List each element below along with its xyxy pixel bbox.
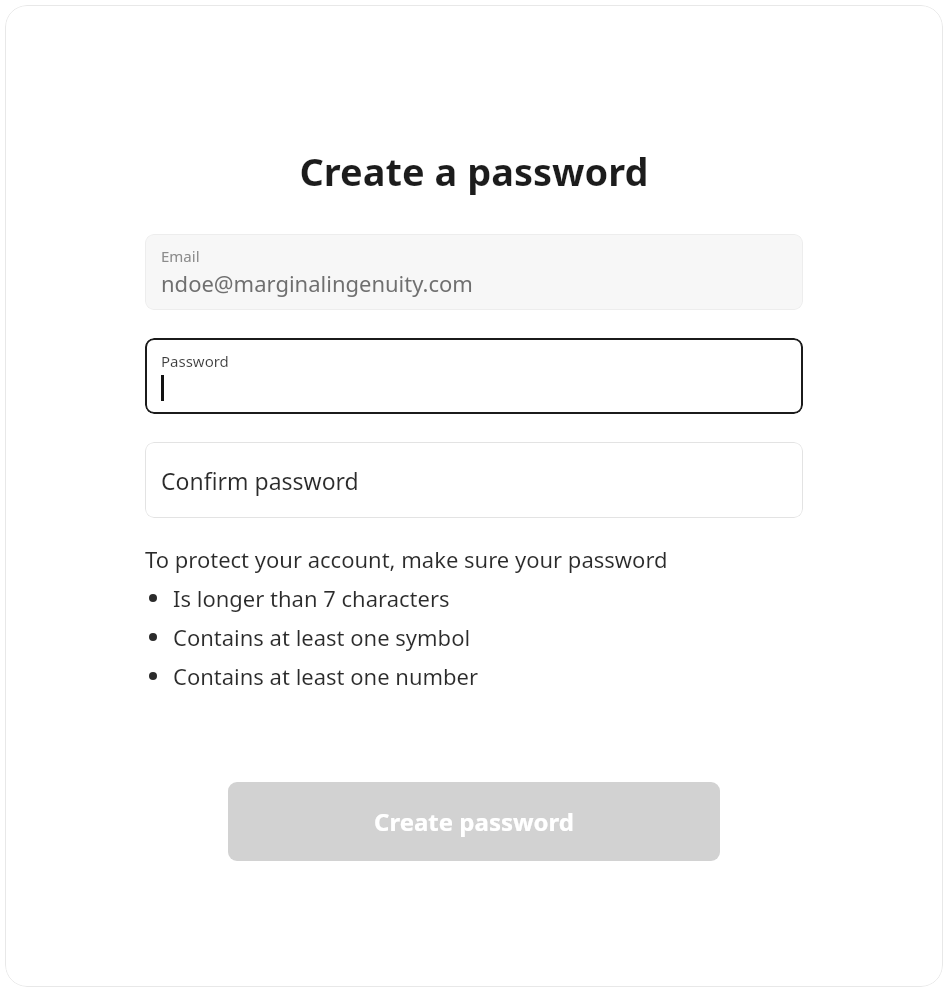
- button[interactable]: Email: [145, 234, 803, 310]
- staticText: Contains at least one number: [173, 661, 479, 691]
- staticText: Create password: [374, 805, 574, 838]
- staticText: ndoe@marginalingenuity.com: [161, 268, 473, 298]
- button[interactable]: Confirm password: [145, 442, 803, 518]
- button[interactable]: Create password: [228, 782, 720, 861]
- button[interactable]: Password: [145, 338, 803, 414]
- staticText: Confirm password: [161, 465, 359, 496]
- staticText: Email: [161, 246, 200, 266]
- staticText: Password: [161, 351, 229, 371]
- staticText: To protect your account, make sure your …: [145, 544, 668, 574]
- staticText: Is longer than 7 characters: [173, 583, 450, 613]
- staticText: Create a password: [5, 145, 943, 197]
- staticText: Contains at least one symbol: [173, 622, 471, 652]
